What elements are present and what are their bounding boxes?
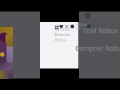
staticText: Comprar Robux bbox=[75, 44, 120, 53]
staticText: roblox.com bbox=[76, 23, 88, 30]
staticText: Conectar Roblox bbox=[55, 32, 71, 42]
staticText: Verificación bbox=[54, 26, 71, 37]
staticText: 10M Robux bbox=[82, 26, 118, 35]
